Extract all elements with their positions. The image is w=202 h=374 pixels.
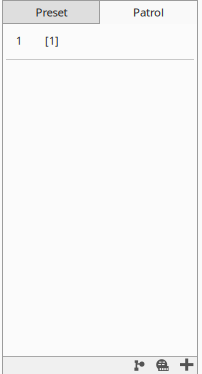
- button[interactable]: Patrol: [100, 0, 197, 24]
- button[interactable]: Go to preset: [133, 358, 147, 372]
- button[interactable]: Call preset: [156, 358, 171, 372]
- staticText: Preset: [35, 4, 67, 20]
- staticText: [1]: [45, 33, 59, 48]
- button[interactable]: Preset: [3, 0, 100, 24]
- staticText: Patrol: [133, 4, 164, 20]
- button[interactable]: Add preset: [180, 358, 194, 371]
- staticText: 1: [16, 33, 22, 48]
- button[interactable]: 1: [3, 24, 197, 59]
